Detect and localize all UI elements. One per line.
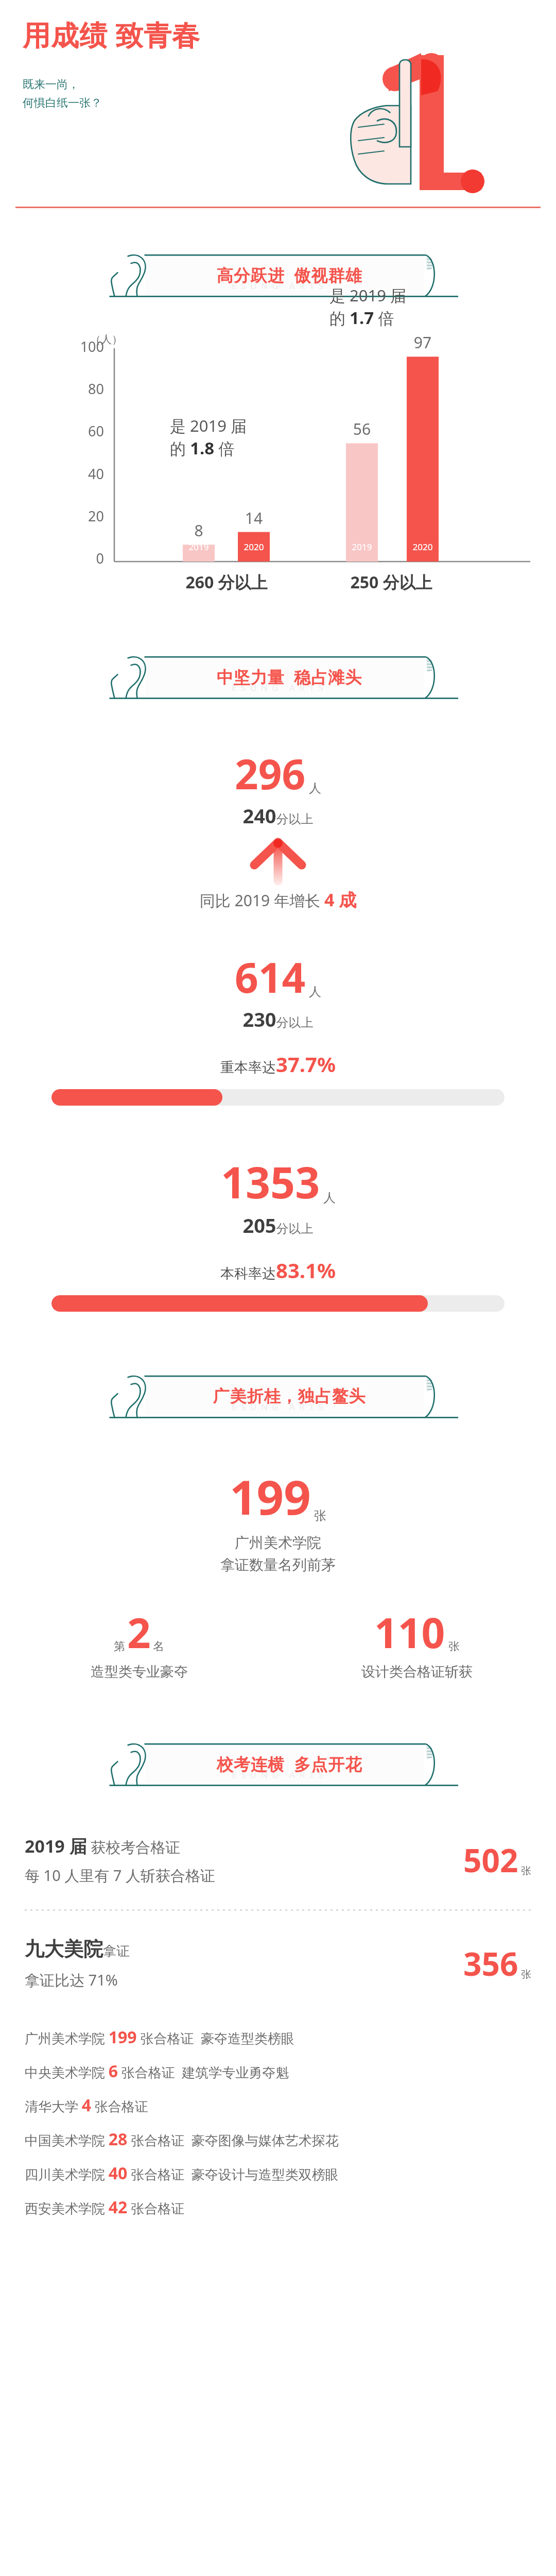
staticText: 拿证数量名列前茅 bbox=[0, 1556, 556, 1574]
staticText: 用成绩 致青春 bbox=[23, 15, 201, 54]
staticText: 四川美术学院 40 张合格证 豪夺设计与造型类双榜眼 bbox=[25, 2162, 339, 2184]
button[interactable]: 高分跃进 傲视群雄 bbox=[0, 247, 556, 309]
staticText: 本科率达83.1% bbox=[0, 1256, 556, 1284]
staticText: 2 bbox=[127, 1604, 151, 1660]
button[interactable]: 校考连横 多点开花 bbox=[0, 1736, 556, 1798]
staticText: 296 bbox=[235, 745, 306, 801]
staticText: 2019 bbox=[346, 541, 378, 553]
staticText: E S U N G A R T S bbox=[0, 682, 556, 693]
staticText: 高分跃进 傲视群雄 bbox=[11, 264, 556, 286]
staticText: 何惧白纸一张？ bbox=[23, 96, 102, 110]
staticText: 九大美院拿证 bbox=[25, 1937, 130, 1961]
staticText: 每 10 人里有 7 人斩获合格证 bbox=[25, 1865, 215, 1886]
staticText: 110 bbox=[374, 1604, 445, 1660]
staticText: 既来一尚， bbox=[23, 77, 79, 92]
staticText: 重本率达37.7% bbox=[0, 1050, 556, 1078]
staticText: 第 bbox=[114, 1639, 125, 1654]
staticText: （人） bbox=[90, 333, 123, 346]
button[interactable] bbox=[51, 1089, 505, 1106]
staticText: 205分以上 bbox=[0, 1212, 556, 1239]
staticText: 356 bbox=[463, 1942, 518, 1985]
staticText: 40 bbox=[57, 464, 104, 483]
staticText: 250 分以上 bbox=[319, 571, 463, 594]
staticText: 2020 bbox=[407, 541, 439, 553]
staticText: 造型类专业豪夺 bbox=[91, 1663, 188, 1681]
staticText: 人 bbox=[323, 1190, 336, 1206]
staticText: 校考连横 多点开花 bbox=[11, 1753, 556, 1775]
staticText: E S U N G A R T S bbox=[0, 280, 556, 292]
other: 校考连横 多点开花 bbox=[98, 1737, 458, 1798]
staticText: 清华大学 4 张合格证 bbox=[25, 2094, 148, 2116]
button[interactable]: 西安美术学院 42 张合格证 bbox=[25, 2190, 531, 2224]
staticText: 拿证比达 71% bbox=[25, 1970, 118, 1990]
staticText: 2019 届 获校考合格证 bbox=[25, 1834, 181, 1858]
staticText: 的 1.8 倍 bbox=[170, 436, 235, 460]
button[interactable]: 中坚力量 稳占滩头 bbox=[0, 649, 556, 711]
button[interactable]: 广州美术学院 199 张合格证 豪夺造型类榜眼 bbox=[25, 2020, 531, 2054]
other: 中坚力量 稳占滩头 bbox=[98, 650, 458, 710]
button[interactable]: 清华大学 4 张合格证 bbox=[25, 2088, 531, 2122]
staticText: 是 2019 届 bbox=[329, 284, 407, 306]
staticText: 人 bbox=[309, 984, 321, 999]
staticText: 张 bbox=[314, 1508, 326, 1523]
staticText: 同比 2019 年增长 4 成 bbox=[0, 888, 556, 911]
staticText: 14 bbox=[238, 507, 270, 529]
staticText: 中坚力量 稳占滩头 bbox=[11, 666, 556, 688]
staticText: 614 bbox=[235, 948, 306, 1005]
staticText: 中央美术学院 6 张合格证 建筑学专业勇夺魁 bbox=[25, 2060, 289, 2082]
other: 高分跃进 傲视群雄 bbox=[98, 248, 458, 309]
button[interactable]: 广美折桂，独占鳌头 bbox=[0, 1368, 556, 1430]
staticText: 中国美术学院 28 张合格证 豪夺图像与媒体艺术探花 bbox=[25, 2128, 339, 2150]
staticText: 广美折桂，独占鳌头 bbox=[11, 1386, 556, 1406]
staticText: 人 bbox=[309, 781, 321, 796]
staticText: 97 bbox=[407, 332, 439, 353]
button[interactable]: 中国美术学院 28 张合格证 豪夺图像与媒体艺术探花 bbox=[25, 2122, 531, 2156]
staticText: 8 bbox=[183, 520, 215, 541]
staticText: 56 bbox=[346, 418, 378, 439]
staticText: 西安美术学院 42 张合格证 bbox=[25, 2196, 185, 2218]
staticText: 张 bbox=[521, 1865, 531, 1877]
staticText: 2020 bbox=[238, 541, 270, 553]
staticText: E S U N G A R T S bbox=[0, 1769, 556, 1781]
staticText: 80 bbox=[57, 379, 104, 398]
staticText: 名 bbox=[153, 1639, 164, 1654]
staticText: 502 bbox=[463, 1838, 518, 1882]
staticText: 20 bbox=[57, 506, 104, 526]
staticText: 张 bbox=[448, 1639, 460, 1654]
other: 广美折桂，独占鳌头 bbox=[98, 1369, 458, 1430]
staticText: 设计类合格证斩获 bbox=[361, 1663, 473, 1681]
staticText: 张 bbox=[521, 1968, 531, 1981]
staticText: 的 1.7 倍 bbox=[329, 306, 394, 329]
staticText: 60 bbox=[57, 421, 104, 440]
staticText: 广州美术学院 199 张合格证 豪夺造型类榜眼 bbox=[25, 2026, 294, 2048]
staticText: 广州美术学院 bbox=[0, 1534, 556, 1552]
button[interactable]: 中央美术学院 6 张合格证 建筑学专业勇夺魁 bbox=[25, 2054, 531, 2088]
staticText: 260 分以上 bbox=[154, 571, 299, 594]
staticText: 1353 bbox=[221, 1152, 320, 1211]
staticText: 199 bbox=[230, 1464, 311, 1529]
staticText: 0 bbox=[57, 549, 104, 568]
button[interactable]: 四川美术学院 40 张合格证 豪夺设计与造型类双榜眼 bbox=[25, 2156, 531, 2190]
staticText: 100 bbox=[57, 337, 104, 356]
staticText: E S U N G A R T S bbox=[0, 1401, 556, 1413]
staticText: 2019 bbox=[183, 541, 215, 553]
button[interactable] bbox=[51, 1295, 505, 1312]
staticText: 是 2019 届 bbox=[170, 415, 247, 436]
staticText: 230分以上 bbox=[0, 1006, 556, 1032]
staticText: 240分以上 bbox=[0, 802, 556, 829]
